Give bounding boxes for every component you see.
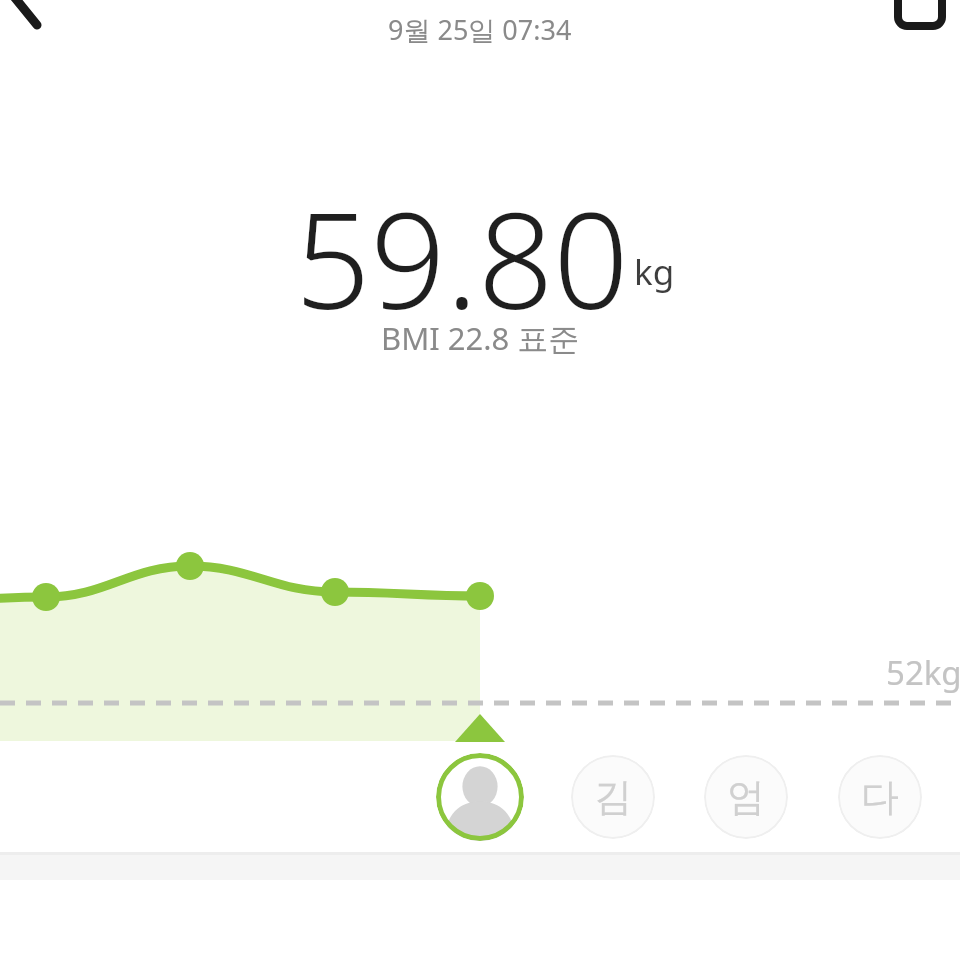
- staticText: 59.80: [295, 168, 629, 348]
- staticText: 9월 25일 07:34: [388, 11, 572, 48]
- staticText: 김: [594, 773, 632, 821]
- staticText: kg: [634, 248, 675, 296]
- staticText: 다: [861, 773, 899, 821]
- staticText: 엄: [727, 773, 765, 821]
- button[interactable]: 엄: [704, 755, 788, 839]
- button[interactable]: 내 프로필: [436, 753, 524, 841]
- button[interactable]: 다: [838, 755, 922, 839]
- button[interactable]: 김: [571, 755, 655, 839]
- staticText: BMI 22.8 표준: [381, 317, 580, 359]
- staticText: 52kg: [886, 650, 960, 695]
